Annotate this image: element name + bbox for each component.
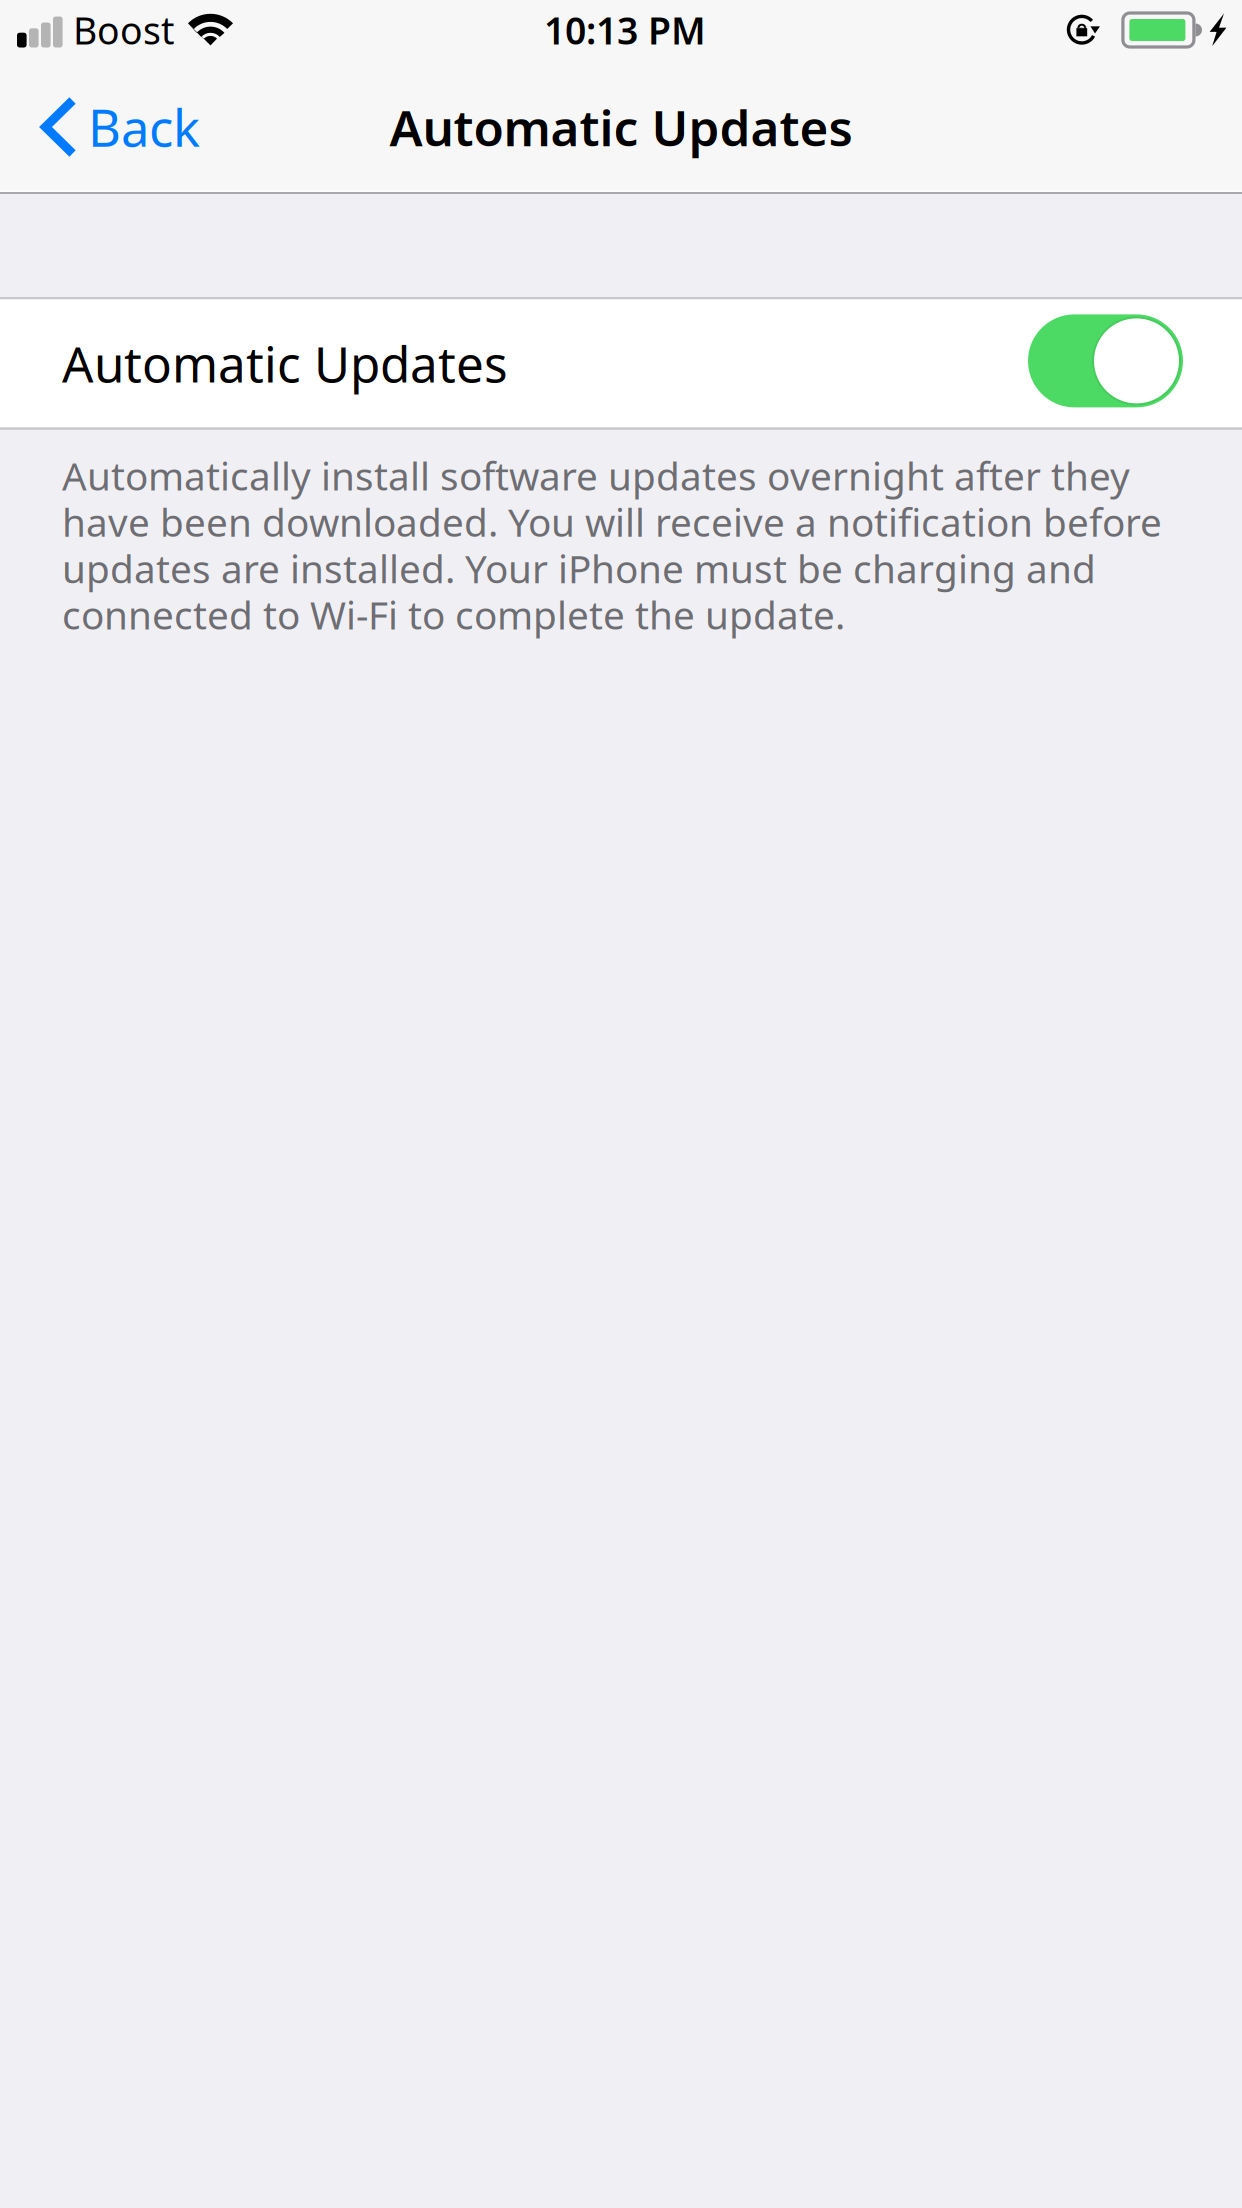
staticText: Automatic Updates [389,94,852,160]
staticText: 10:13 PM [544,5,706,55]
staticText: Automatically install software updates o… [62,450,1162,640]
staticText: Boost [73,5,174,55]
staticText: Automatic Updates [62,331,508,396]
staticText: Back [88,93,200,161]
button[interactable]: Automatic Updates [0,299,1242,427]
button[interactable]: Back [0,61,222,193]
